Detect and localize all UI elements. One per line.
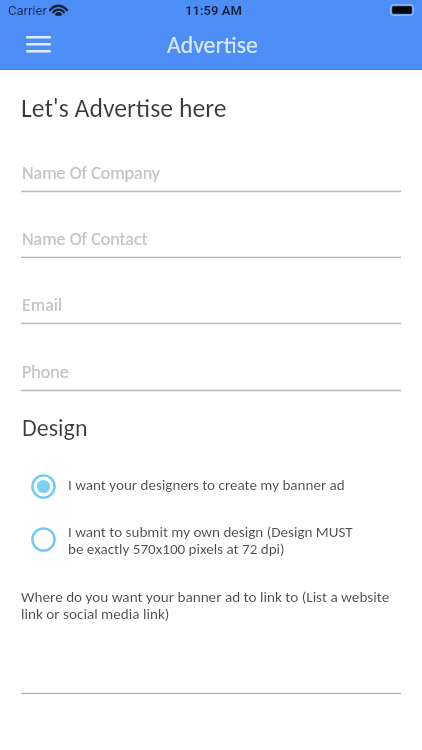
staticText: Email bbox=[22, 294, 63, 316]
staticText: Name Of Company bbox=[22, 162, 160, 184]
button[interactable]: Email bbox=[21, 278, 401, 324]
staticText: Design bbox=[22, 413, 88, 442]
staticText: Name Of Contact bbox=[22, 228, 148, 250]
button[interactable]: Name Of Company bbox=[21, 146, 401, 192]
button[interactable]: Phone bbox=[21, 345, 401, 391]
staticText: Let's Advertise here bbox=[21, 93, 227, 124]
staticText: Carrier bbox=[8, 3, 47, 18]
staticText: Where do you want your banner ad to link… bbox=[21, 588, 390, 623]
button[interactable]: Open navigation menu bbox=[18, 27, 58, 61]
staticText: I want your designers to create my banne… bbox=[68, 476, 345, 494]
staticText: Advertise bbox=[167, 30, 258, 59]
staticText: Phone bbox=[22, 361, 69, 383]
button[interactable]: I want your designers to create my banne… bbox=[21, 472, 401, 506]
staticText: I want to submit my own design (Design M… bbox=[68, 523, 353, 557]
staticText: 11:59 AM bbox=[185, 3, 242, 18]
button[interactable]: Name Of Contact bbox=[21, 212, 401, 258]
button[interactable]: I want to submit my own design (Design M… bbox=[21, 525, 401, 559]
